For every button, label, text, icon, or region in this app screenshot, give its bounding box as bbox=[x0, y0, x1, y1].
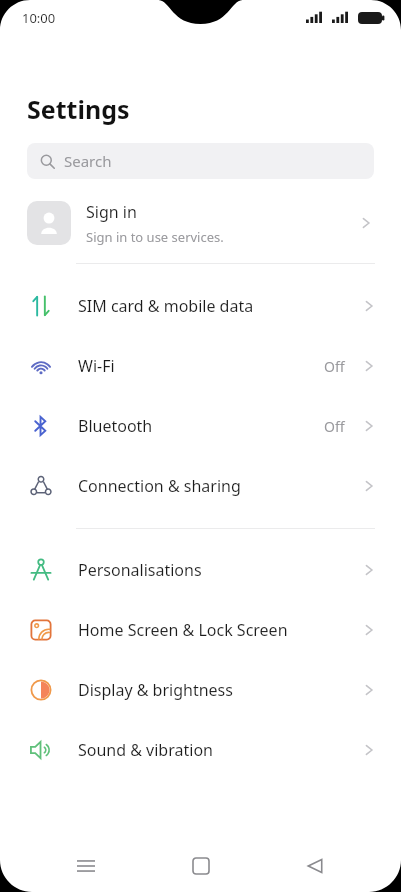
staticText: Bluetooth bbox=[78, 415, 324, 437]
staticText: Off bbox=[324, 357, 345, 376]
staticText: Sign in to use services. bbox=[86, 228, 224, 246]
button[interactable]: Personalisations bbox=[0, 540, 401, 600]
staticText: Personalisations bbox=[78, 559, 361, 581]
staticText: Display & brightness bbox=[78, 679, 361, 701]
staticText: Off bbox=[324, 417, 345, 436]
button[interactable]: Sign in bbox=[0, 191, 401, 255]
staticText: SIM card & mobile data bbox=[78, 295, 361, 317]
button[interactable]: Wi-Fi bbox=[0, 336, 401, 396]
button[interactable]: SIM card & mobile data bbox=[0, 276, 401, 336]
button[interactable]: Home bbox=[173, 840, 229, 892]
staticText: Home Screen & Lock Screen bbox=[78, 619, 361, 641]
button[interactable]: Home Screen & Lock Screen bbox=[0, 600, 401, 660]
button[interactable]: Search bbox=[27, 143, 374, 179]
staticText: 10:00 bbox=[22, 9, 56, 27]
button[interactable]: Connection & sharing bbox=[0, 456, 401, 516]
button[interactable]: Recents bbox=[58, 840, 114, 892]
staticText: Sign in bbox=[86, 201, 137, 223]
staticText: Wi-Fi bbox=[78, 355, 324, 377]
staticText: Search bbox=[64, 151, 112, 171]
staticText: Sound & vibration bbox=[78, 739, 361, 761]
staticText: Settings bbox=[27, 92, 130, 126]
button[interactable]: Back bbox=[287, 840, 343, 892]
button[interactable]: Sound & vibration bbox=[0, 720, 401, 780]
staticText: Connection & sharing bbox=[78, 475, 361, 497]
button[interactable]: Display & brightness bbox=[0, 660, 401, 720]
button[interactable]: Bluetooth bbox=[0, 396, 401, 456]
